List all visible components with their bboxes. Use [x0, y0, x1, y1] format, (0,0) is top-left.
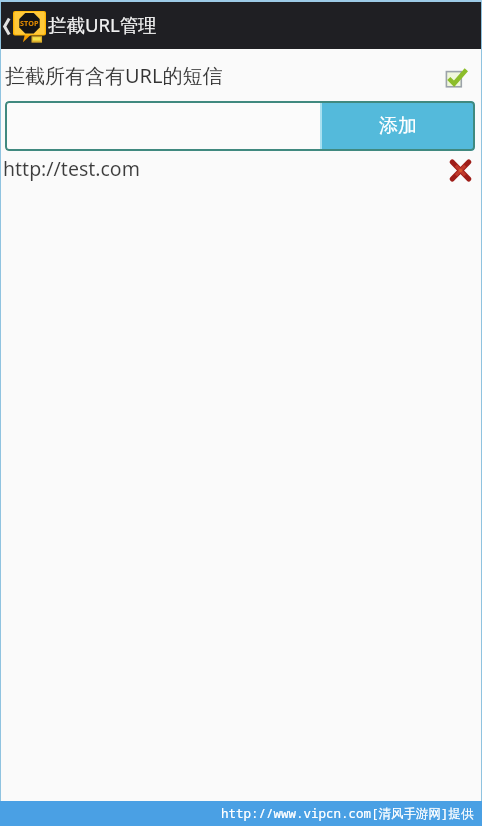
button[interactable]: http://test.com [1, 152, 481, 189]
button[interactable] [5, 101, 320, 151]
staticText: 添加 [379, 114, 417, 138]
staticText: http://www.vipcn.com[清风手游网]提供 [221, 805, 474, 822]
staticText: STOP [20, 18, 39, 28]
button[interactable]: 拦截所有含有URL的短信 [1, 49, 481, 99]
staticText: http://test.com [3, 155, 140, 182]
staticText: 拦截所有含有URL的短信 [5, 62, 223, 89]
staticText: 拦截URL管理 [48, 12, 157, 37]
button[interactable]: Back [1, 10, 14, 42]
button[interactable]: Delete [444, 154, 476, 186]
button[interactable]: 添加 [320, 101, 475, 151]
